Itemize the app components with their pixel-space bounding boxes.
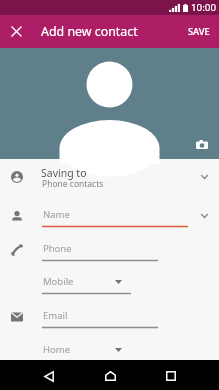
button[interactable]: Home [98,364,122,388]
button[interactable]: Email [0,304,219,337]
button[interactable]: Back [37,364,61,388]
button[interactable]: Saving to [0,161,219,197]
staticText: Saving to [41,166,87,180]
staticText: Phone [43,242,72,255]
staticText: SAVE [188,25,210,38]
button[interactable]: Mobile [0,270,219,303]
button[interactable]: Close [5,20,28,43]
staticText: Add new contact [41,23,138,40]
staticText: Phone contacts [42,178,104,190]
staticText: 10:00 [191,1,217,14]
staticText: Mobile [43,275,74,288]
button[interactable]: Home [0,338,219,371]
button[interactable]: Name [0,203,219,236]
staticText: Email [43,309,68,322]
staticText: Home [43,343,71,356]
button[interactable]: SAVE [179,18,219,45]
staticText: Name [43,208,70,221]
button[interactable]: Change photo [194,138,209,150]
button[interactable]: Recent apps [159,364,183,388]
button[interactable]: Phone [0,237,219,270]
